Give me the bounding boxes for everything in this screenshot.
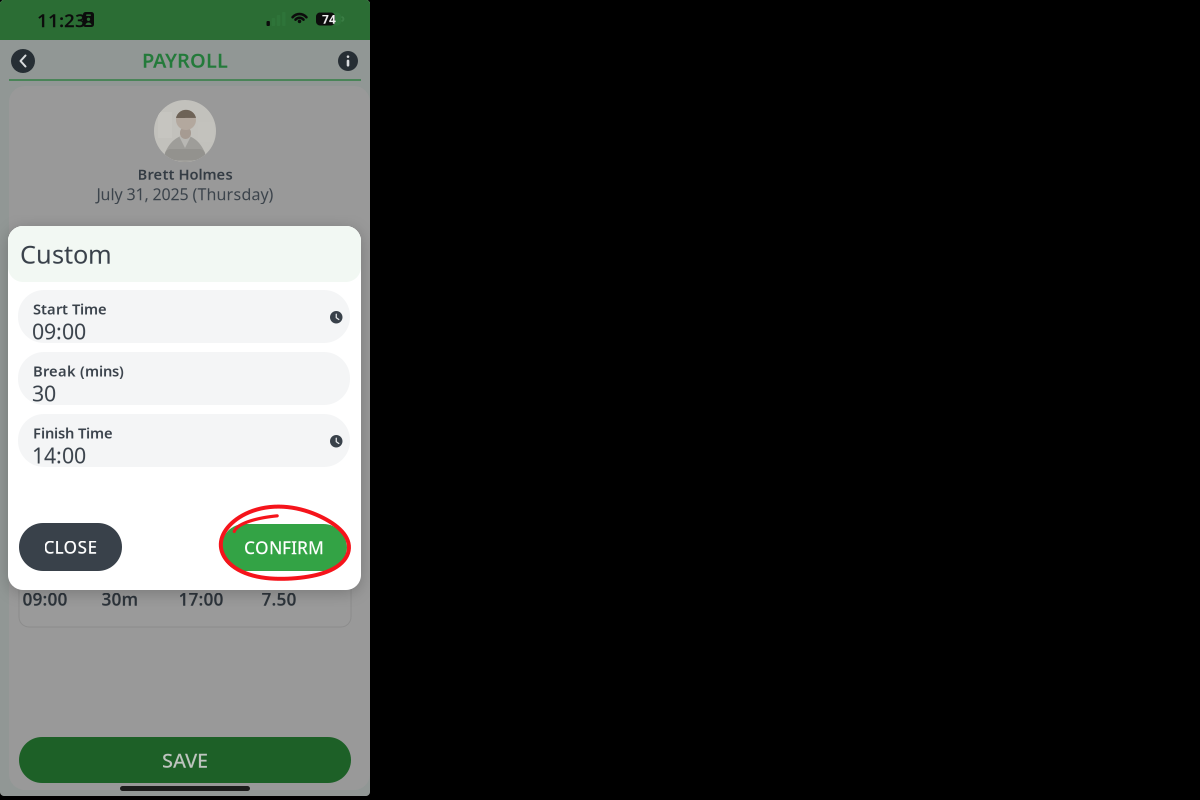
button[interactable]: SAVE (19, 737, 351, 783)
staticText: SAVE (162, 747, 208, 773)
button[interactable]: Start Time (18, 290, 350, 343)
staticText: 74 (322, 11, 336, 27)
staticText: Brett Holmes (137, 164, 232, 184)
button[interactable]: CONFIRM (221, 524, 347, 571)
staticText: 09:00 (22, 587, 67, 610)
staticText: 7.50 (261, 587, 296, 610)
staticText: Finish Time (33, 423, 113, 442)
staticText: 14:00 (32, 441, 86, 469)
button[interactable]: Back (11, 49, 35, 73)
staticText: Custom (20, 237, 112, 271)
button[interactable]: Break (mins) (18, 352, 350, 405)
staticText: 30 (32, 379, 56, 407)
staticText: 11:23 (37, 8, 86, 32)
button[interactable]: CLOSE (19, 523, 122, 571)
staticText: 17:00 (178, 587, 223, 610)
staticText: Break (mins) (33, 361, 124, 380)
staticText: July 31, 2025 (Thursday) (96, 183, 273, 205)
button[interactable]: Information (338, 51, 358, 71)
staticText: PAYROLL (142, 47, 228, 73)
staticText: Start Time (33, 299, 107, 318)
button[interactable]: 09:00 (19, 575, 351, 627)
staticText: 09:00 (32, 317, 86, 345)
staticText: CLOSE (43, 535, 97, 558)
staticText: CONFIRM (244, 536, 324, 559)
staticText: 30m (101, 587, 138, 610)
button[interactable]: Finish Time (18, 414, 350, 467)
